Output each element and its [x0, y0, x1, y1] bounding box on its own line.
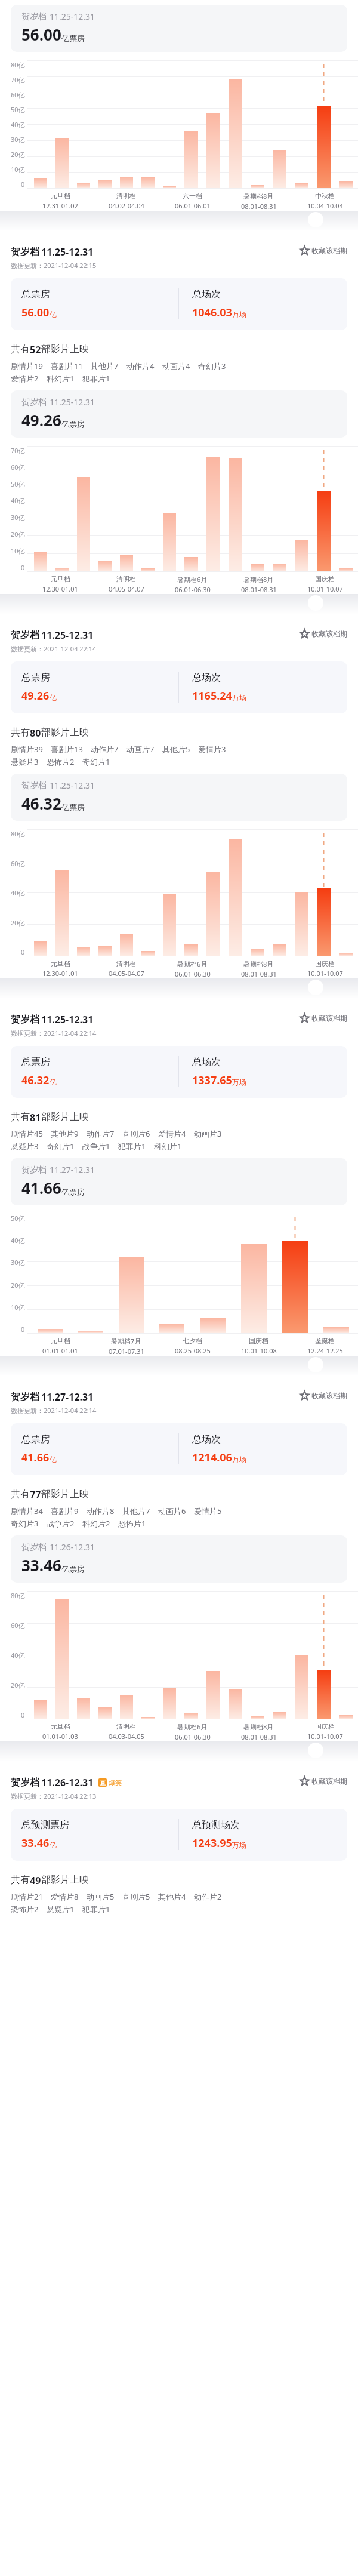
staticText: 70亿 [11, 75, 25, 84]
staticText: 清明档 [116, 959, 136, 968]
staticText: 08.01-08.31 [241, 970, 277, 978]
staticText: 清明档 [116, 192, 136, 200]
staticText: 亿 [50, 693, 57, 702]
staticText: 总票房 [21, 1433, 50, 1445]
staticText: 元旦档 [51, 1337, 70, 1345]
staticText: 爱情片5 [194, 1506, 222, 1516]
staticText: 11.25-12.31 [41, 629, 94, 642]
staticText: 总票房 [21, 288, 50, 300]
staticText: 剧情片34 [11, 1506, 43, 1516]
staticText: 其他片7 [91, 361, 119, 371]
staticText: 共有 [11, 1874, 30, 1886]
button[interactable]: 收藏该档期 [297, 1776, 347, 1786]
staticText: 08.25-08.25 [175, 1346, 211, 1355]
staticText: 数据更新：2021-12-04 22:13 [11, 1792, 97, 1801]
staticText: 部影片上映 [41, 343, 89, 355]
staticText: 动作片4 [126, 361, 155, 371]
button[interactable]: 收藏该档期 [297, 1013, 347, 1023]
staticText: 共有 [11, 727, 30, 738]
button[interactable]: 收藏该档期 [297, 245, 347, 255]
staticText: 动作片7 [91, 744, 119, 755]
staticText: 喜剧片5 [122, 1891, 150, 1902]
staticText: 奇幻片3 [11, 1518, 39, 1529]
button[interactable]: 贺岁档 [11, 5, 347, 52]
staticText: 41.66 [21, 1177, 61, 1198]
staticText: 科幻片2 [82, 1518, 110, 1529]
staticText: 52 [30, 343, 41, 356]
button[interactable]: 总票房 [11, 278, 347, 330]
staticText: 11.25-12.31 [50, 396, 95, 408]
staticText: 贺岁档 [11, 629, 39, 641]
staticText: 49.26 [21, 410, 61, 430]
staticText: 总预测场次 [192, 1819, 240, 1831]
staticText: 81 [30, 1111, 41, 1124]
staticText: 01.01-01.03 [42, 1732, 78, 1741]
staticText: 10.04-10.04 [307, 201, 343, 210]
button[interactable]: 贺岁档 [11, 1158, 347, 1205]
button[interactable]: 收藏该档期 [297, 1390, 347, 1400]
staticText: 元旦档 [51, 575, 70, 583]
staticText: 清明档 [116, 1722, 136, 1731]
staticText: 0 [21, 1325, 25, 1334]
staticText: 20亿 [11, 1281, 25, 1289]
staticText: 数据更新：2021-12-04 22:14 [11, 644, 97, 653]
staticText: 总场次 [192, 1056, 221, 1068]
staticText: 万场 [232, 1078, 246, 1087]
staticText: 70亿 [11, 446, 25, 455]
staticText: 49.26 [21, 688, 50, 703]
staticText: 数据更新：2021-12-04 22:14 [11, 1406, 97, 1415]
staticText: 亿票房 [61, 1564, 85, 1574]
staticText: 41.66 [21, 1450, 50, 1465]
staticText: 圣诞档 [315, 1337, 335, 1345]
staticText: 33.46 [21, 1836, 50, 1851]
staticText: 爱情片3 [198, 744, 226, 755]
staticText: 49 [30, 1874, 41, 1887]
staticText: 贺岁档 [11, 1014, 39, 1026]
staticText: 暑期档8月 [243, 1722, 274, 1731]
staticText: 1243.95 [192, 1836, 232, 1851]
staticText: 12.30-01.01 [42, 584, 78, 593]
staticText: 30亿 [11, 1258, 25, 1267]
button[interactable]: 贺岁档 [11, 1535, 347, 1583]
staticText: 06.01-06.30 [175, 1732, 211, 1741]
staticText: 50亿 [11, 1214, 25, 1223]
button[interactable]: 总票房 [11, 1423, 347, 1475]
staticText: 国庆档 [315, 575, 335, 583]
staticText: 总场次 [192, 288, 221, 300]
staticText: 暑期档8月 [243, 959, 274, 968]
staticText: 万场 [232, 310, 246, 319]
staticText: 剧情片19 [11, 361, 43, 371]
button[interactable]: 总票房 [11, 661, 347, 713]
button[interactable]: 收藏该档期 [297, 629, 347, 638]
staticText: 08.01-08.31 [241, 585, 277, 594]
staticText: 国庆档 [249, 1337, 268, 1345]
button[interactable]: 总预测票房 [11, 1809, 347, 1861]
staticText: 暑期档7月 [111, 1337, 141, 1346]
staticText: 总票房 [21, 1056, 50, 1068]
staticText: 元旦档 [51, 1722, 70, 1731]
staticText: 60亿 [11, 463, 25, 472]
staticText: 部影片上映 [41, 1111, 89, 1123]
staticText: 其他片5 [162, 744, 190, 755]
button[interactable]: 贺岁档 [11, 390, 347, 438]
button[interactable]: 总票房 [11, 1046, 347, 1098]
staticText: 喜剧片6 [122, 1128, 150, 1139]
staticText: 56.00 [21, 305, 50, 320]
staticText: 爱情片2 [11, 373, 39, 384]
staticText: 喜剧片13 [51, 744, 83, 755]
staticText: 0 [21, 563, 25, 572]
staticText: 40亿 [11, 1651, 25, 1660]
staticText: 04.05-04.07 [109, 584, 144, 593]
staticText: 收藏该档期 [311, 1391, 347, 1400]
staticText: 40亿 [11, 888, 25, 897]
staticText: 科幻片1 [154, 1141, 182, 1152]
staticText: 奇幻片3 [198, 361, 226, 371]
staticText: 贺岁档 [21, 780, 47, 791]
staticText: 80亿 [11, 1591, 25, 1600]
staticText: 剧情片39 [11, 744, 43, 755]
staticText: 数据更新：2021-12-04 22:14 [11, 1029, 97, 1038]
button[interactable]: 贺岁档 [11, 774, 347, 821]
staticText: 0 [21, 947, 25, 956]
staticText: 直 [100, 1780, 106, 1786]
staticText: 40亿 [11, 496, 25, 505]
